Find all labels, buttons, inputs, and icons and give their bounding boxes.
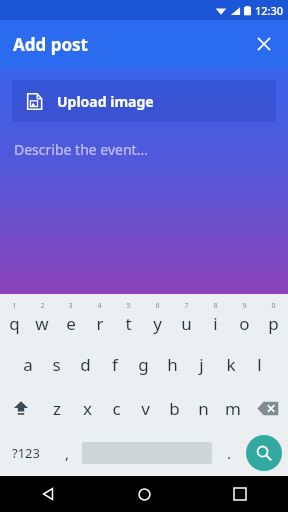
staticText: .: [227, 443, 232, 463]
button[interactable]: d: [71, 342, 100, 386]
button[interactable]: 1: [0, 296, 28, 342]
staticText: u: [181, 312, 192, 335]
staticText: v: [141, 397, 150, 420]
staticText: Describe the event…: [14, 140, 148, 159]
button[interactable]: z: [42, 386, 72, 430]
button[interactable]: n: [189, 386, 218, 430]
button[interactable]: Back: [26, 476, 70, 512]
staticText: z: [53, 397, 61, 420]
staticText: 8: [213, 301, 218, 311]
staticText: m: [225, 397, 241, 420]
button[interactable]: g: [129, 342, 158, 386]
button[interactable]: v: [131, 386, 160, 430]
button[interactable]: f: [100, 342, 129, 386]
staticText: y: [153, 312, 162, 335]
button[interactable]: Recent apps: [218, 476, 262, 512]
staticText: ,: [65, 443, 70, 463]
button[interactable]: Shift: [0, 386, 42, 430]
staticText: 5: [126, 301, 131, 311]
button[interactable]: 5: [114, 296, 143, 342]
staticText: 0: [271, 301, 276, 311]
staticText: n: [198, 397, 209, 420]
staticText: g: [138, 353, 149, 376]
button[interactable]: a: [14, 342, 42, 386]
button[interactable]: h: [158, 342, 187, 386]
button[interactable]: .: [212, 430, 246, 476]
staticText: 1: [12, 301, 17, 311]
staticText: c: [112, 397, 121, 420]
staticText: h: [167, 353, 178, 376]
button[interactable]: Backspace: [247, 386, 288, 430]
button[interactable]: k: [216, 342, 245, 386]
staticText: 12:30: [255, 3, 284, 18]
staticText: k: [226, 353, 236, 376]
staticText: a: [23, 353, 33, 376]
button[interactable]: 2: [28, 296, 56, 342]
staticText: 6: [155, 301, 160, 311]
button[interactable]: 6: [143, 296, 172, 342]
button[interactable]: l: [245, 342, 274, 386]
staticText: 4: [97, 301, 102, 311]
button[interactable]: ?123: [0, 430, 52, 476]
staticText: w: [35, 312, 49, 335]
staticText: 9: [242, 301, 247, 311]
button[interactable]: 8: [201, 296, 230, 342]
button[interactable]: 3: [56, 296, 85, 342]
button[interactable]: ,: [52, 430, 82, 476]
staticText: b: [169, 397, 180, 420]
staticText: x: [83, 397, 92, 420]
button[interactable]: Close: [246, 26, 282, 62]
staticText: Upload image: [57, 92, 154, 111]
staticText: j: [199, 353, 204, 376]
staticText: 7: [184, 301, 189, 311]
button[interactable]: 9: [230, 296, 259, 342]
button[interactable]: m: [218, 386, 247, 430]
button[interactable]: Home: [122, 476, 166, 512]
staticText: 3: [68, 301, 73, 311]
staticText: s: [52, 353, 61, 376]
staticText: f: [112, 353, 118, 376]
staticText: e: [66, 312, 76, 335]
staticText: r: [96, 312, 104, 335]
button[interactable]: 4: [85, 296, 114, 342]
staticText: 2: [40, 301, 45, 311]
staticText: o: [239, 312, 250, 335]
button[interactable]: b: [160, 386, 189, 430]
staticText: l: [257, 353, 262, 376]
button[interactable]: Upload image: [12, 80, 276, 122]
button[interactable]: 0: [259, 296, 288, 342]
staticText: t: [125, 312, 132, 335]
button[interactable]: j: [187, 342, 216, 386]
button[interactable]: x: [72, 386, 102, 430]
button[interactable]: c: [102, 386, 131, 430]
button[interactable]: s: [42, 342, 71, 386]
button[interactable]: 7: [172, 296, 201, 342]
staticText: Add post: [13, 33, 88, 56]
button[interactable]: Search: [246, 435, 282, 471]
staticText: d: [80, 353, 91, 376]
staticText: ?123: [12, 444, 40, 462]
staticText: p: [268, 312, 279, 335]
staticText: i: [213, 312, 218, 335]
staticText: q: [9, 312, 20, 335]
